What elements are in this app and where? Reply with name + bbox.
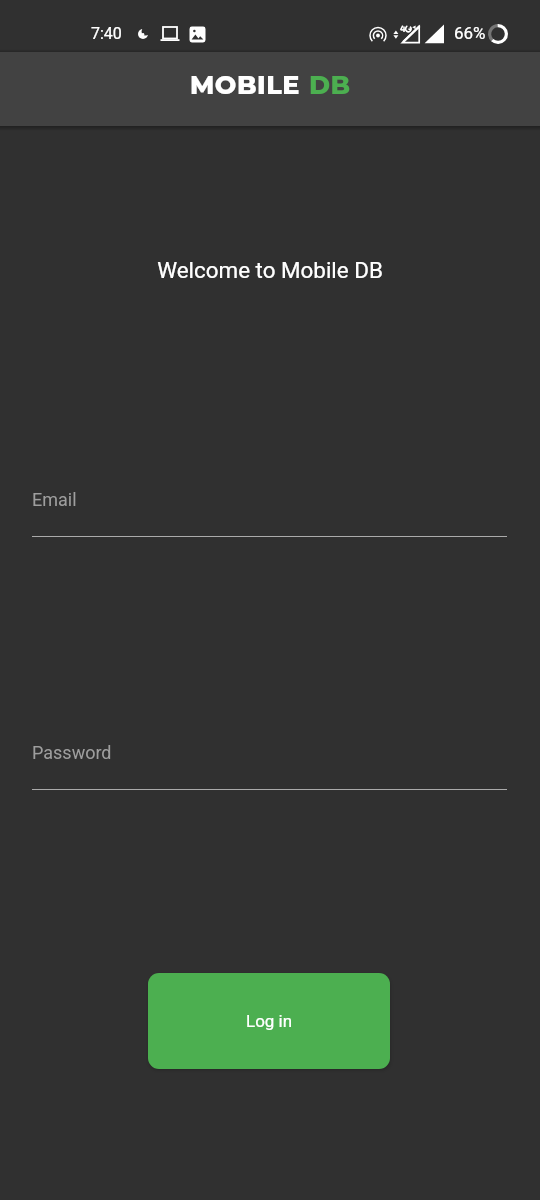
staticText: Email xyxy=(32,489,77,510)
staticText: Welcome to Mobile DB xyxy=(157,257,383,283)
button[interactable]: Email xyxy=(32,489,507,539)
staticText: MOBILE xyxy=(190,69,300,100)
staticText: DB xyxy=(309,69,351,100)
staticText: 7:40 xyxy=(91,24,122,43)
other: Mobile data 4G off xyxy=(393,25,421,44)
other: Signal strength xyxy=(424,24,446,44)
staticText: Log in xyxy=(246,1011,293,1031)
other: Hotspot xyxy=(369,26,387,44)
other: Cast to computer xyxy=(160,26,180,42)
staticText: Password xyxy=(32,742,112,763)
button[interactable]: Password xyxy=(32,742,507,792)
other: Battery 66 percent xyxy=(487,23,509,45)
button[interactable]: Log in xyxy=(148,973,390,1069)
other: Screenshot xyxy=(189,26,206,43)
other: Do not disturb xyxy=(138,29,148,39)
staticText: 66% xyxy=(454,23,486,43)
